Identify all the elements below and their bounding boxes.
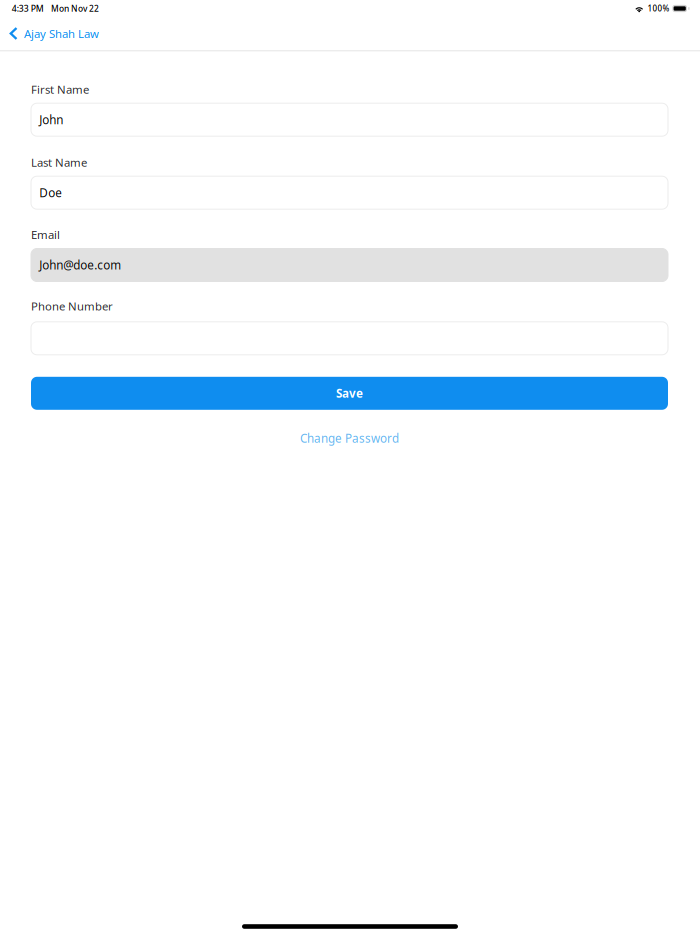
staticText: 4:33 PM <box>12 3 44 14</box>
button[interactable]: Change Password <box>31 432 668 445</box>
staticText: Phone Number <box>31 298 113 314</box>
staticText: First Name <box>31 82 89 97</box>
button[interactable]: Last Name, Doe <box>31 176 668 209</box>
staticText: Last Name <box>31 155 87 170</box>
button[interactable]: Email, John@doe.com <box>31 248 668 281</box>
staticText: Change Password <box>300 430 399 446</box>
staticText: Ajay Shah Law <box>24 26 99 41</box>
staticText: Doe <box>39 185 62 201</box>
staticText: Email <box>31 227 60 242</box>
staticText: Save <box>336 385 363 401</box>
staticText: John <box>39 112 63 128</box>
staticText: John@doe.com <box>39 257 121 273</box>
button[interactable]: Back to Ajay Shah Law <box>0 17 109 50</box>
button[interactable]: Save <box>31 377 668 410</box>
button[interactable]: First Name, John <box>31 103 668 136</box>
staticText: 100% <box>647 3 669 14</box>
staticText: Mon Nov 22 <box>51 3 99 14</box>
